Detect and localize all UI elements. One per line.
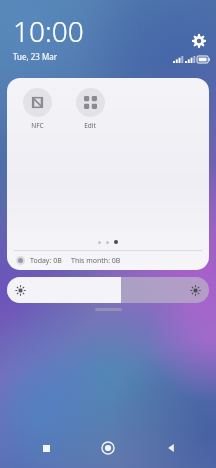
button[interactable]: NFC [15,88,59,130]
staticText: 10:00 [13,12,84,50]
button[interactable]: Back [154,431,188,465]
staticText: Edit [84,121,96,130]
button[interactable]: Expand [95,308,122,311]
button[interactable]: Settings [190,32,208,50]
button[interactable]: Today: 0B [7,251,209,270]
button[interactable]: Edit [68,88,112,130]
button[interactable]: Brightness [7,277,209,303]
staticText: Today: 0B [30,256,62,266]
button[interactable]: Recents [29,431,63,465]
staticText: This month: 0B [71,256,121,266]
staticText: Tue, 23 Mar [13,51,58,62]
button[interactable]: Home [91,431,125,465]
staticText: NFC [31,121,44,130]
